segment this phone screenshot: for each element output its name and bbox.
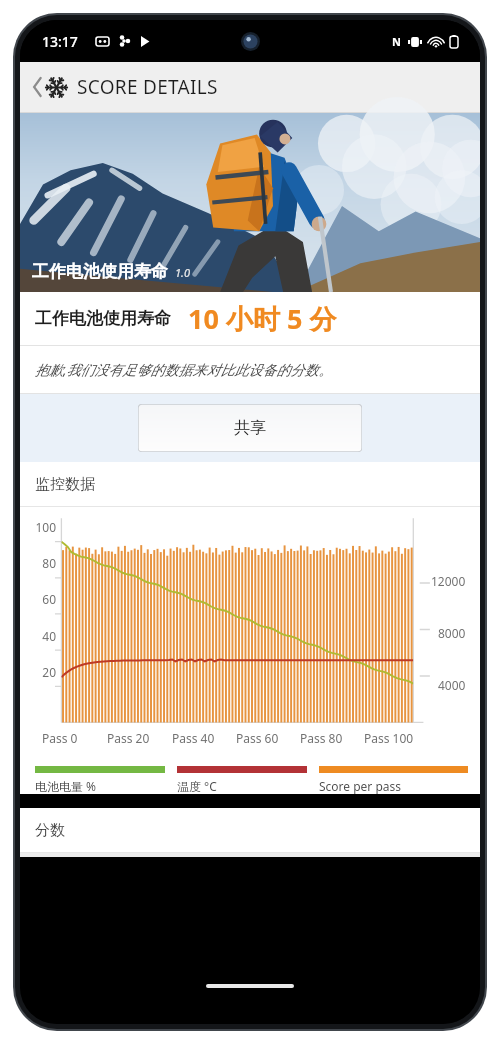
staticText: 60 [20, 591, 56, 607]
staticText: Pass 0 [42, 730, 78, 746]
staticText: 温度 °C [177, 778, 217, 794]
staticText: 8000 [438, 625, 466, 641]
staticText: 抱歉,我们没有足够的数据来对比此设备的分数。 [35, 360, 333, 379]
button[interactable]: 共享 [138, 404, 362, 452]
staticText: 12000 [431, 573, 466, 589]
staticText: 10 小时 5 分 [188, 300, 337, 337]
staticText: Pass 40 [172, 730, 215, 746]
staticText: 监控数据 [35, 475, 95, 494]
staticText: SCORE DETAILS [77, 74, 218, 100]
staticText: Pass 20 [107, 730, 150, 746]
staticText: 4000 [438, 677, 466, 693]
staticText: 100 [20, 519, 56, 535]
staticText: N [392, 34, 401, 49]
staticText: 工作电池使用寿命 [35, 308, 171, 329]
staticText: 80 [20, 555, 56, 571]
staticText: 13:17 [42, 32, 78, 51]
staticText: Pass 80 [300, 730, 343, 746]
staticText: Pass 100 [364, 730, 414, 746]
staticText: 工作电池使用寿命 [32, 261, 168, 282]
staticText: 共享 [234, 418, 266, 438]
staticText: 电池电量 % [35, 778, 97, 794]
button[interactable]: Back [20, 66, 45, 108]
staticText: 40 [20, 628, 56, 644]
staticText: 20 [20, 664, 56, 680]
staticText: Score per pass [319, 778, 402, 794]
staticText: 分数 [35, 821, 65, 840]
staticText: Pass 60 [236, 730, 279, 746]
staticText: 1.0 [175, 265, 190, 280]
